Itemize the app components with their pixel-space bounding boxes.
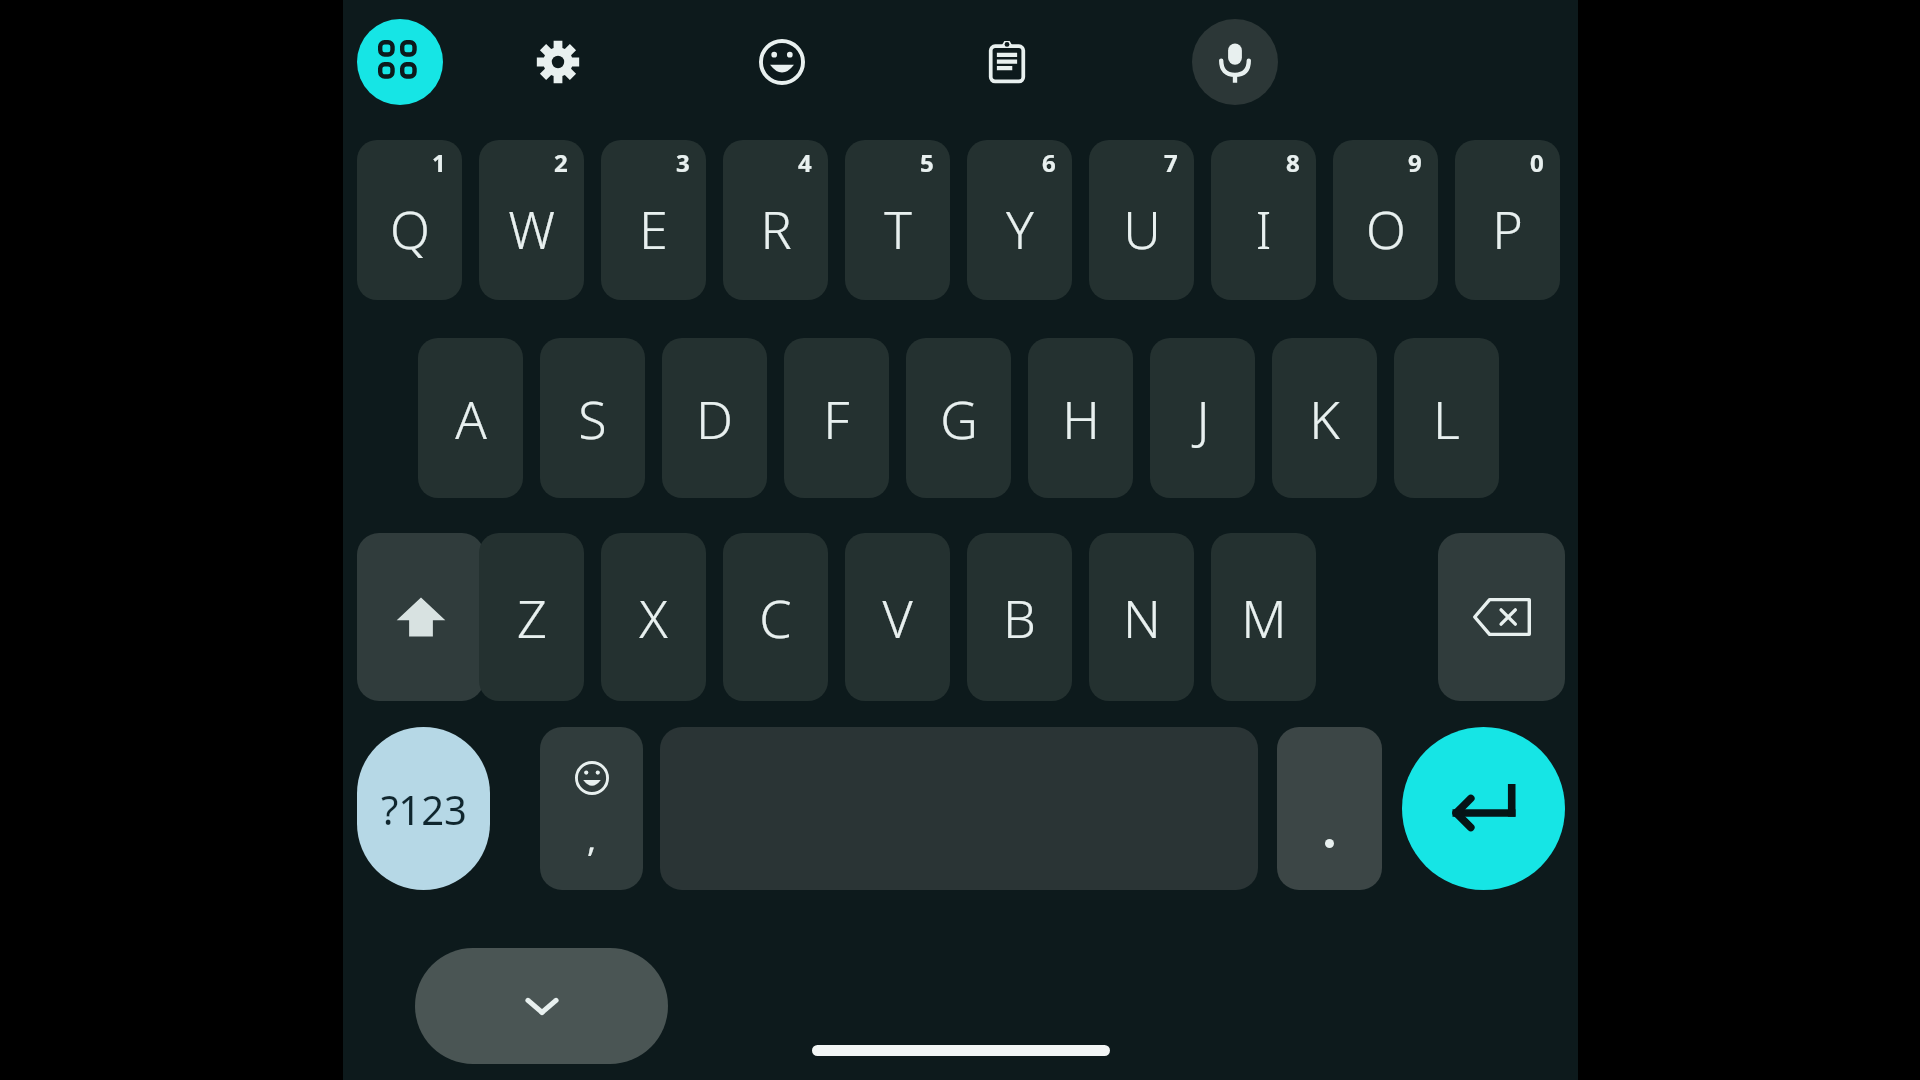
button[interactable]: V bbox=[845, 533, 950, 701]
button[interactable]: Period bbox=[1277, 727, 1382, 890]
staticText: L bbox=[1433, 383, 1460, 454]
staticText: Z bbox=[517, 582, 547, 653]
button[interactable]: F bbox=[784, 338, 889, 498]
staticText: X bbox=[639, 582, 668, 653]
button[interactable]: L bbox=[1394, 338, 1499, 498]
staticText: , bbox=[587, 816, 597, 862]
button[interactable]: A bbox=[418, 338, 523, 498]
button[interactable]: X bbox=[601, 533, 706, 701]
button[interactable]: Shift bbox=[357, 533, 484, 701]
button[interactable]: Enter bbox=[1402, 727, 1565, 890]
staticText: V bbox=[882, 582, 913, 653]
button[interactable]: G bbox=[906, 338, 1011, 498]
button[interactable]: Hide keyboard bbox=[415, 948, 668, 1064]
button[interactable]: Y bbox=[967, 140, 1072, 300]
staticText: 5 bbox=[920, 146, 934, 179]
button[interactable]: B bbox=[967, 533, 1072, 701]
staticText: F bbox=[823, 383, 850, 454]
button[interactable]: E bbox=[601, 140, 706, 300]
staticText: S bbox=[578, 383, 607, 454]
staticText: 1 bbox=[432, 146, 446, 179]
button[interactable]: K bbox=[1272, 338, 1377, 498]
button[interactable]: Backspace bbox=[1438, 533, 1565, 701]
button[interactable]: ?123 bbox=[357, 727, 490, 890]
staticText: Y bbox=[1006, 193, 1034, 264]
staticText: T bbox=[884, 193, 912, 264]
button[interactable]: Q bbox=[357, 140, 462, 300]
staticText: ?123 bbox=[381, 782, 467, 836]
button[interactable]: O bbox=[1333, 140, 1438, 300]
button[interactable]: Settings bbox=[515, 19, 601, 105]
button[interactable]: Clipboard bbox=[964, 19, 1050, 105]
staticText: 0 bbox=[1530, 146, 1544, 179]
staticText: C bbox=[759, 582, 792, 653]
staticText: 4 bbox=[798, 146, 812, 179]
button[interactable]: N bbox=[1089, 533, 1194, 701]
staticText: D bbox=[696, 383, 733, 454]
staticText: B bbox=[1003, 582, 1036, 653]
staticText: 7 bbox=[1164, 146, 1178, 179]
staticText: Q bbox=[390, 193, 430, 264]
button[interactable]: R bbox=[723, 140, 828, 300]
staticText: 2 bbox=[554, 146, 568, 179]
button[interactable]: M bbox=[1211, 533, 1316, 701]
button[interactable]: H bbox=[1028, 338, 1133, 498]
staticText: U bbox=[1123, 193, 1161, 264]
staticText: A bbox=[455, 383, 487, 454]
staticText: J bbox=[1196, 383, 1210, 454]
staticText: 8 bbox=[1286, 146, 1300, 179]
staticText: P bbox=[1492, 193, 1523, 264]
button[interactable]: P bbox=[1455, 140, 1560, 300]
button[interactable]: T bbox=[845, 140, 950, 300]
button[interactable]: J bbox=[1150, 338, 1255, 498]
button[interactable]: Emoji and comma bbox=[540, 727, 643, 890]
staticText: O bbox=[1366, 193, 1406, 264]
staticText: R bbox=[760, 193, 792, 264]
button[interactable]: Apps bbox=[357, 19, 443, 105]
button[interactable]: Emoji bbox=[739, 19, 825, 105]
staticText: G bbox=[940, 383, 978, 454]
staticText: 6 bbox=[1042, 146, 1056, 179]
staticText: 9 bbox=[1408, 146, 1422, 179]
staticText: M bbox=[1241, 582, 1287, 653]
button[interactable]: W bbox=[479, 140, 584, 300]
button[interactable]: Z bbox=[479, 533, 584, 701]
button[interactable]: U bbox=[1089, 140, 1194, 300]
staticText: W bbox=[508, 193, 555, 264]
button[interactable]: I bbox=[1211, 140, 1316, 300]
button[interactable]: Voice input bbox=[1192, 19, 1278, 105]
staticText: 3 bbox=[676, 146, 690, 179]
button[interactable]: S bbox=[540, 338, 645, 498]
staticText: K bbox=[1309, 383, 1340, 454]
staticText: H bbox=[1062, 383, 1100, 454]
button[interactable]: D bbox=[662, 338, 767, 498]
staticText: N bbox=[1123, 582, 1161, 653]
button[interactable]: C bbox=[723, 533, 828, 701]
staticText: E bbox=[639, 193, 668, 264]
staticText: I bbox=[1255, 193, 1272, 264]
